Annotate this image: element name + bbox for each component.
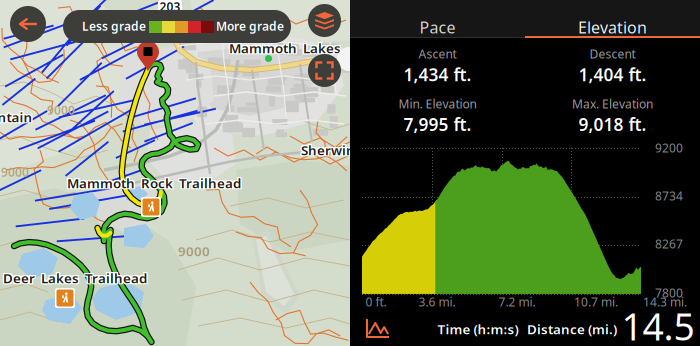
staticText: ntain (0, 108, 32, 126)
staticText: 14.3 mi. (643, 294, 687, 310)
staticText: Mammoth Lakes (229, 39, 341, 57)
staticText: Sherwin (301, 142, 355, 160)
staticText: 1,404 ft. (578, 63, 646, 86)
staticText: Deer Lakes Trailhead (3, 269, 147, 287)
staticText: Mammoth Rock Trailhead (66, 175, 240, 193)
staticText: 9000 (178, 242, 210, 260)
staticText: Mammoth Lakes (229, 38, 341, 56)
staticText: Mammoth Rock Trailhead (66, 173, 240, 191)
staticText: 10.7 mi. (574, 294, 618, 310)
staticText: Descent (589, 46, 635, 62)
staticText: Mammoth Rock Trailhead (68, 174, 242, 192)
staticText: Deer Lakes Trailhead (2, 270, 146, 288)
staticText: Pace (419, 17, 455, 38)
staticText: 0 ft. (365, 294, 386, 310)
staticText: Deer Lakes Trailhead (3, 268, 147, 286)
staticText: Sherwin (301, 141, 355, 159)
staticText: Deer Lakes Trailhead (2, 268, 146, 286)
staticText: Deer Lakes Trailhead (4, 270, 148, 288)
staticText: Mammoth Rock Trailhead (66, 174, 240, 192)
staticText: Mammoth Lakes (228, 40, 340, 58)
staticText: Mammoth Rock Trailhead (68, 173, 242, 191)
staticText: 203 (159, 0, 180, 14)
button[interactable]: Chart options (358, 314, 398, 342)
staticText: 14.5 (621, 301, 694, 346)
staticText: Mammoth Lakes (228, 38, 340, 56)
staticText: Sherwin (302, 140, 356, 158)
staticText: Mammoth Lakes (228, 39, 340, 57)
staticText: Max. Elevation (572, 96, 653, 112)
staticText: Distance (mi.) (527, 320, 617, 338)
button[interactable]: Less grade (63, 10, 291, 43)
staticText: ntain (0, 107, 32, 125)
staticText: 8267 (655, 236, 683, 252)
staticText: 1,434 ft. (403, 63, 471, 86)
staticText: ntain (0, 107, 34, 125)
staticText: 3.6 mi. (418, 294, 455, 310)
staticText: 7800 (655, 285, 683, 301)
staticText: ntain (0, 107, 31, 125)
staticText: Mammoth Lakes (229, 40, 341, 58)
staticText: 8734 (655, 188, 683, 204)
staticText: Sherwin (302, 141, 356, 159)
staticText: Deer Lakes Trailhead (2, 269, 146, 287)
staticText: 9000 (47, 102, 75, 118)
staticText: Mammoth Rock Trailhead (67, 174, 241, 192)
staticText: Sherwin (301, 140, 355, 158)
staticText: Deer Lakes Trailhead (4, 269, 148, 287)
staticText: Sherwin (302, 142, 356, 160)
staticText: Sherwin (300, 140, 354, 158)
staticText: More grade (216, 18, 284, 34)
staticText: Mammoth Lakes (230, 39, 342, 57)
staticText: 7,995 ft. (403, 113, 471, 136)
staticText: 9,018 ft. (578, 113, 646, 136)
staticText: Deer Lakes Trailhead (3, 270, 147, 288)
staticText: Deer Lakes Trailhead (4, 268, 148, 286)
staticText: Sherwin (300, 141, 354, 159)
staticText: Mammoth Lakes (230, 40, 342, 58)
button[interactable]: Map layers (308, 4, 341, 37)
staticText: 9200 (655, 140, 683, 156)
button[interactable]: Expand map (308, 54, 341, 87)
staticText: 9000 (1, 164, 29, 180)
staticText: ntain (0, 109, 34, 127)
staticText: Min. Elevation (398, 96, 476, 112)
staticText: Ascent (418, 46, 456, 62)
staticText: ntain (0, 109, 32, 127)
staticText: Mammoth Rock Trailhead (68, 175, 242, 193)
staticText: Mammoth Lakes (230, 38, 342, 56)
staticText: ntain (0, 109, 31, 127)
staticText: ntain (0, 108, 34, 126)
staticText: Mammoth Rock Trailhead (67, 175, 241, 193)
button[interactable]: Back (10, 6, 46, 42)
staticText: Time (h:m:s) (437, 320, 518, 338)
staticText: Mammoth Rock Trailhead (67, 173, 241, 191)
staticText: Elevation (578, 17, 647, 38)
staticText: ntain (0, 108, 31, 126)
button[interactable]: Pace (350, 0, 525, 38)
staticText: Less grade (82, 18, 146, 34)
button[interactable]: Elevation (525, 0, 700, 38)
staticText: 7.2 mi. (498, 294, 535, 310)
staticText: Sherwin (300, 142, 354, 160)
